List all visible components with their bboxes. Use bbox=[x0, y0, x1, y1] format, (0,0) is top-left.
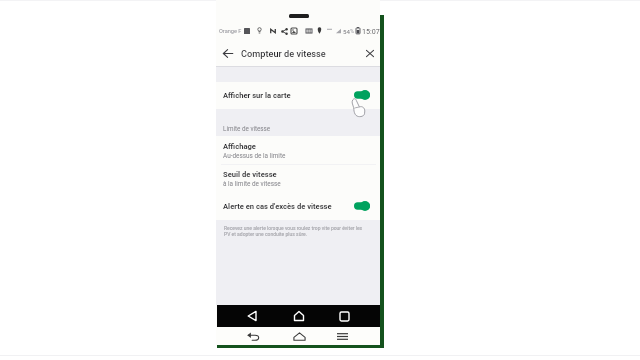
button[interactable]: Afficher sur la carte bbox=[216, 82, 380, 109]
staticText: Afficher sur la carte bbox=[223, 91, 291, 100]
button[interactable]: Back bbox=[245, 328, 262, 345]
button[interactable]: Alerte en cas d'excès de vitesse bbox=[216, 193, 380, 220]
staticText: Orange F bbox=[219, 28, 242, 35]
button[interactable]: Close bbox=[361, 45, 378, 62]
button[interactable]: Recents bbox=[336, 308, 352, 324]
staticText: Seuil de vitesse bbox=[223, 170, 277, 179]
button[interactable]: Home bbox=[291, 308, 307, 324]
button[interactable]: Back bbox=[244, 308, 260, 324]
staticText: Compteur de vitesse bbox=[241, 48, 326, 59]
staticText: Au-dessus de la limite bbox=[223, 152, 286, 160]
staticText: à la limite de vitesse bbox=[223, 180, 281, 188]
staticText: Limite de vitesse bbox=[223, 125, 271, 132]
button[interactable]: Menu bbox=[334, 328, 351, 345]
staticText: Recevez une alerte lorsque vous roulez t… bbox=[224, 225, 368, 237]
button[interactable]: Back bbox=[219, 45, 236, 62]
button[interactable]: Home bbox=[291, 328, 308, 345]
button[interactable]: Affichage bbox=[216, 138, 380, 164]
staticText: % bbox=[350, 28, 355, 35]
button[interactable]: Seuil de vitesse bbox=[216, 166, 380, 192]
staticText: Alerte en cas d'excès de vitesse bbox=[223, 202, 332, 211]
staticText: Affichage bbox=[223, 142, 256, 151]
staticText: 15:07 bbox=[362, 27, 380, 35]
staticText: 54 bbox=[343, 28, 350, 35]
